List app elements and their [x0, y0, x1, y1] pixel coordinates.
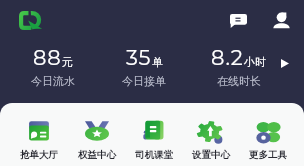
- staticText: 今日流水: [31, 74, 75, 88]
- staticText: 在线时长: [217, 74, 261, 88]
- button[interactable]: Messages: [227, 10, 249, 32]
- staticText: 设置中心: [192, 149, 230, 161]
- staticText: 35: [126, 45, 152, 71]
- button[interactable]: 8.2: [193, 45, 283, 88]
- button[interactable]: 更多工具: [239, 103, 296, 161]
- staticText: 更多工具: [249, 149, 287, 161]
- button[interactable]: App logo: [19, 11, 41, 30]
- button[interactable]: 司机课堂: [125, 103, 182, 161]
- button[interactable]: 设置中心: [182, 103, 239, 161]
- button[interactable]: Profile: [270, 10, 292, 32]
- staticText: 元: [62, 55, 73, 69]
- button[interactable]: 35: [99, 45, 189, 88]
- button[interactable]: 权益中心: [68, 103, 125, 161]
- staticText: 权益中心: [78, 149, 116, 161]
- button[interactable]: 抢单大厅: [10, 103, 68, 161]
- staticText: 今日接单: [122, 74, 166, 88]
- button[interactable]: More details: [278, 56, 292, 70]
- staticText: 小时: [244, 55, 266, 69]
- staticText: 88: [33, 45, 62, 71]
- staticText: 单: [152, 55, 163, 69]
- button[interactable]: 88: [8, 45, 98, 88]
- staticText: 8.2: [211, 45, 244, 71]
- staticText: 抢单大厅: [20, 149, 58, 161]
- staticText: 司机课堂: [135, 149, 173, 161]
